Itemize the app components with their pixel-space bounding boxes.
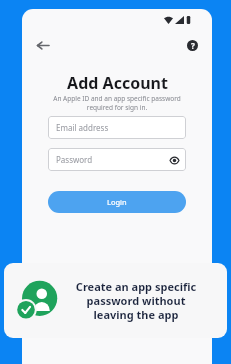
button[interactable]: Back — [28, 31, 56, 59]
button[interactable]: Show password — [167, 153, 181, 167]
staticText: Login — [107, 197, 127, 207]
staticText: Add Account — [67, 72, 168, 94]
button[interactable]: Create an app specific password without … — [4, 263, 227, 338]
staticText: An Apple ID and an app specific password… — [42, 94, 192, 112]
staticText: Create an app specific password without … — [66, 279, 206, 322]
staticText: Email address — [56, 122, 109, 133]
button[interactable]: Help — [178, 31, 206, 59]
button[interactable]: Password — [48, 148, 186, 171]
button[interactable]: Email address — [48, 116, 186, 139]
staticText: ? — [191, 40, 195, 51]
staticText: Password — [56, 154, 93, 165]
button[interactable]: Login — [48, 191, 186, 213]
